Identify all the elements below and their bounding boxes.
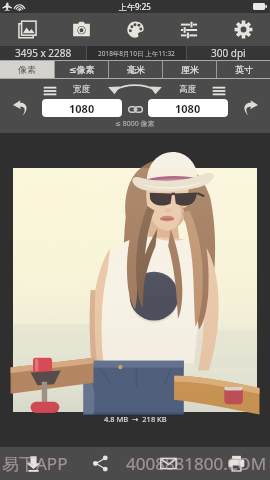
button[interactable]: 高度 — [148, 99, 228, 117]
staticText: 1080 — [175, 101, 201, 116]
button[interactable]: Lock aspect ratio — [126, 100, 144, 118]
button[interactable]: 像素 — [0, 61, 54, 78]
staticText: 高度 — [179, 84, 196, 95]
button[interactable]: 宽度 — [42, 99, 122, 117]
button[interactable]: Email — [134, 447, 202, 480]
staticText: 4.8 MB → 218 KB — [104, 414, 167, 424]
button[interactable]: Camera — [54, 13, 108, 46]
button[interactable]: Palette — [108, 13, 162, 46]
staticText: 300 dpi — [211, 46, 246, 60]
staticText: 厘米 — [181, 64, 199, 75]
button[interactable]: Gallery — [0, 13, 54, 46]
staticText: 3495 x 2288 — [15, 46, 72, 60]
staticText: ≤ 8000 像素 — [115, 119, 155, 129]
staticText: ≤像素 — [69, 64, 95, 75]
staticText: 1080 — [69, 101, 95, 116]
staticText: 像素 — [18, 64, 36, 75]
button[interactable]: Settings — [216, 13, 270, 46]
button[interactable]: Share — [67, 447, 134, 480]
button[interactable]: Redo — [237, 95, 262, 120]
staticText: 易下APP — [2, 452, 68, 475]
staticText: 毫米 — [127, 64, 145, 75]
button[interactable]: ≤像素 — [55, 61, 108, 78]
staticText: 宽度 — [73, 84, 90, 95]
button[interactable]: Undo — [8, 95, 33, 120]
staticText: 4008881800.COM — [126, 452, 267, 475]
button[interactable]: Adjust — [162, 13, 216, 46]
button[interactable]: 英寸 — [217, 61, 270, 78]
button[interactable]: Print — [202, 447, 270, 480]
button[interactable]: 厘米 — [163, 61, 216, 78]
button[interactable]: Save — [0, 447, 67, 480]
button[interactable]: 毫米 — [109, 61, 162, 78]
staticText: 英寸 — [235, 64, 253, 75]
staticText: 2018年8月10日 上午11:32 — [98, 49, 175, 58]
staticText: 上午9:25 — [119, 1, 151, 12]
